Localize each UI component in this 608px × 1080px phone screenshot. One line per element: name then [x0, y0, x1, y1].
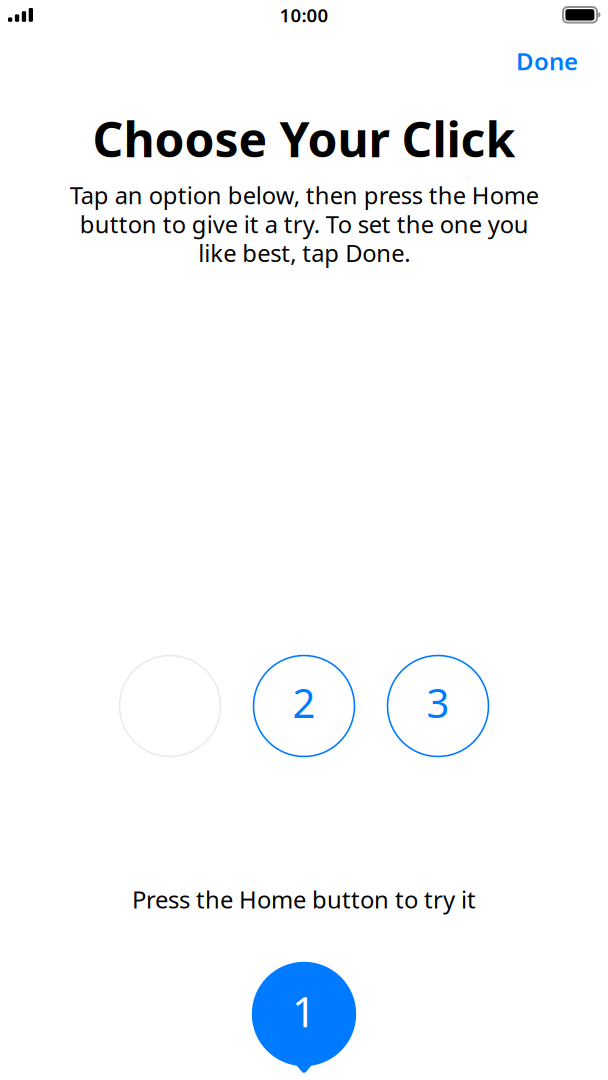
staticText: Done — [516, 45, 578, 77]
staticText: 10:00 — [279, 2, 328, 28]
button[interactable]: Done — [502, 36, 592, 86]
staticText: 3 — [426, 675, 449, 730]
button[interactable]: Click style 2 — [237, 647, 371, 765]
staticText: Press the Home button to try it — [132, 883, 476, 915]
staticText: 1 — [292, 982, 316, 1040]
staticText: 2 — [292, 675, 315, 730]
button[interactable]: Click style 3 — [371, 647, 505, 765]
staticText: Tap an option below, then press the Home… — [69, 179, 538, 269]
button[interactable]: Click style 1, selected — [103, 647, 237, 765]
staticText: Choose Your Click — [92, 106, 515, 171]
